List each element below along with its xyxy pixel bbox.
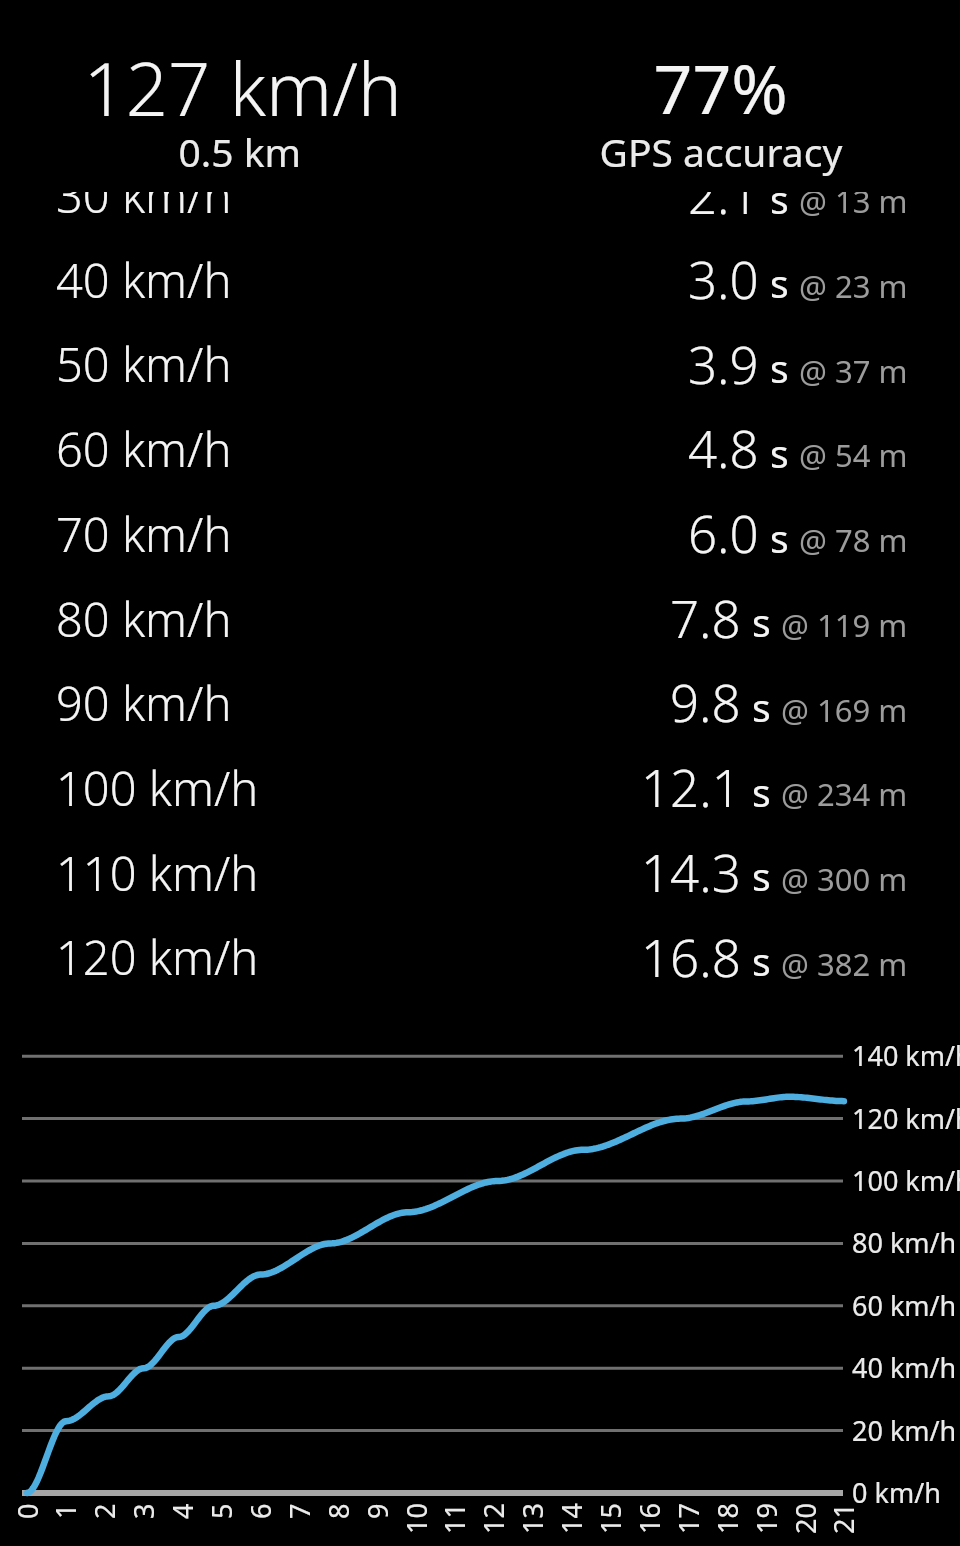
button[interactable]: Acceleration results chart: [0, 0, 960, 1546]
